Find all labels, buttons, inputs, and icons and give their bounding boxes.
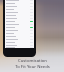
staticText: To Fit Your Needs [15, 64, 50, 70]
button[interactable] [5, 35, 34, 38]
button[interactable] [5, 23, 34, 26]
staticText: Customisation [18, 58, 47, 64]
button[interactable] [5, 47, 34, 48]
button[interactable] [5, 8, 34, 11]
button[interactable] [5, 20, 34, 23]
button[interactable] [5, 41, 34, 44]
button[interactable] [5, 29, 34, 32]
button[interactable] [5, 32, 34, 35]
button[interactable] [5, 0, 34, 2]
button[interactable] [5, 17, 34, 20]
button[interactable] [5, 14, 34, 17]
button[interactable] [5, 2, 34, 5]
button[interactable] [5, 38, 34, 41]
button[interactable] [5, 5, 34, 8]
button[interactable] [5, 11, 34, 14]
button[interactable] [5, 26, 34, 29]
button[interactable] [5, 44, 34, 47]
